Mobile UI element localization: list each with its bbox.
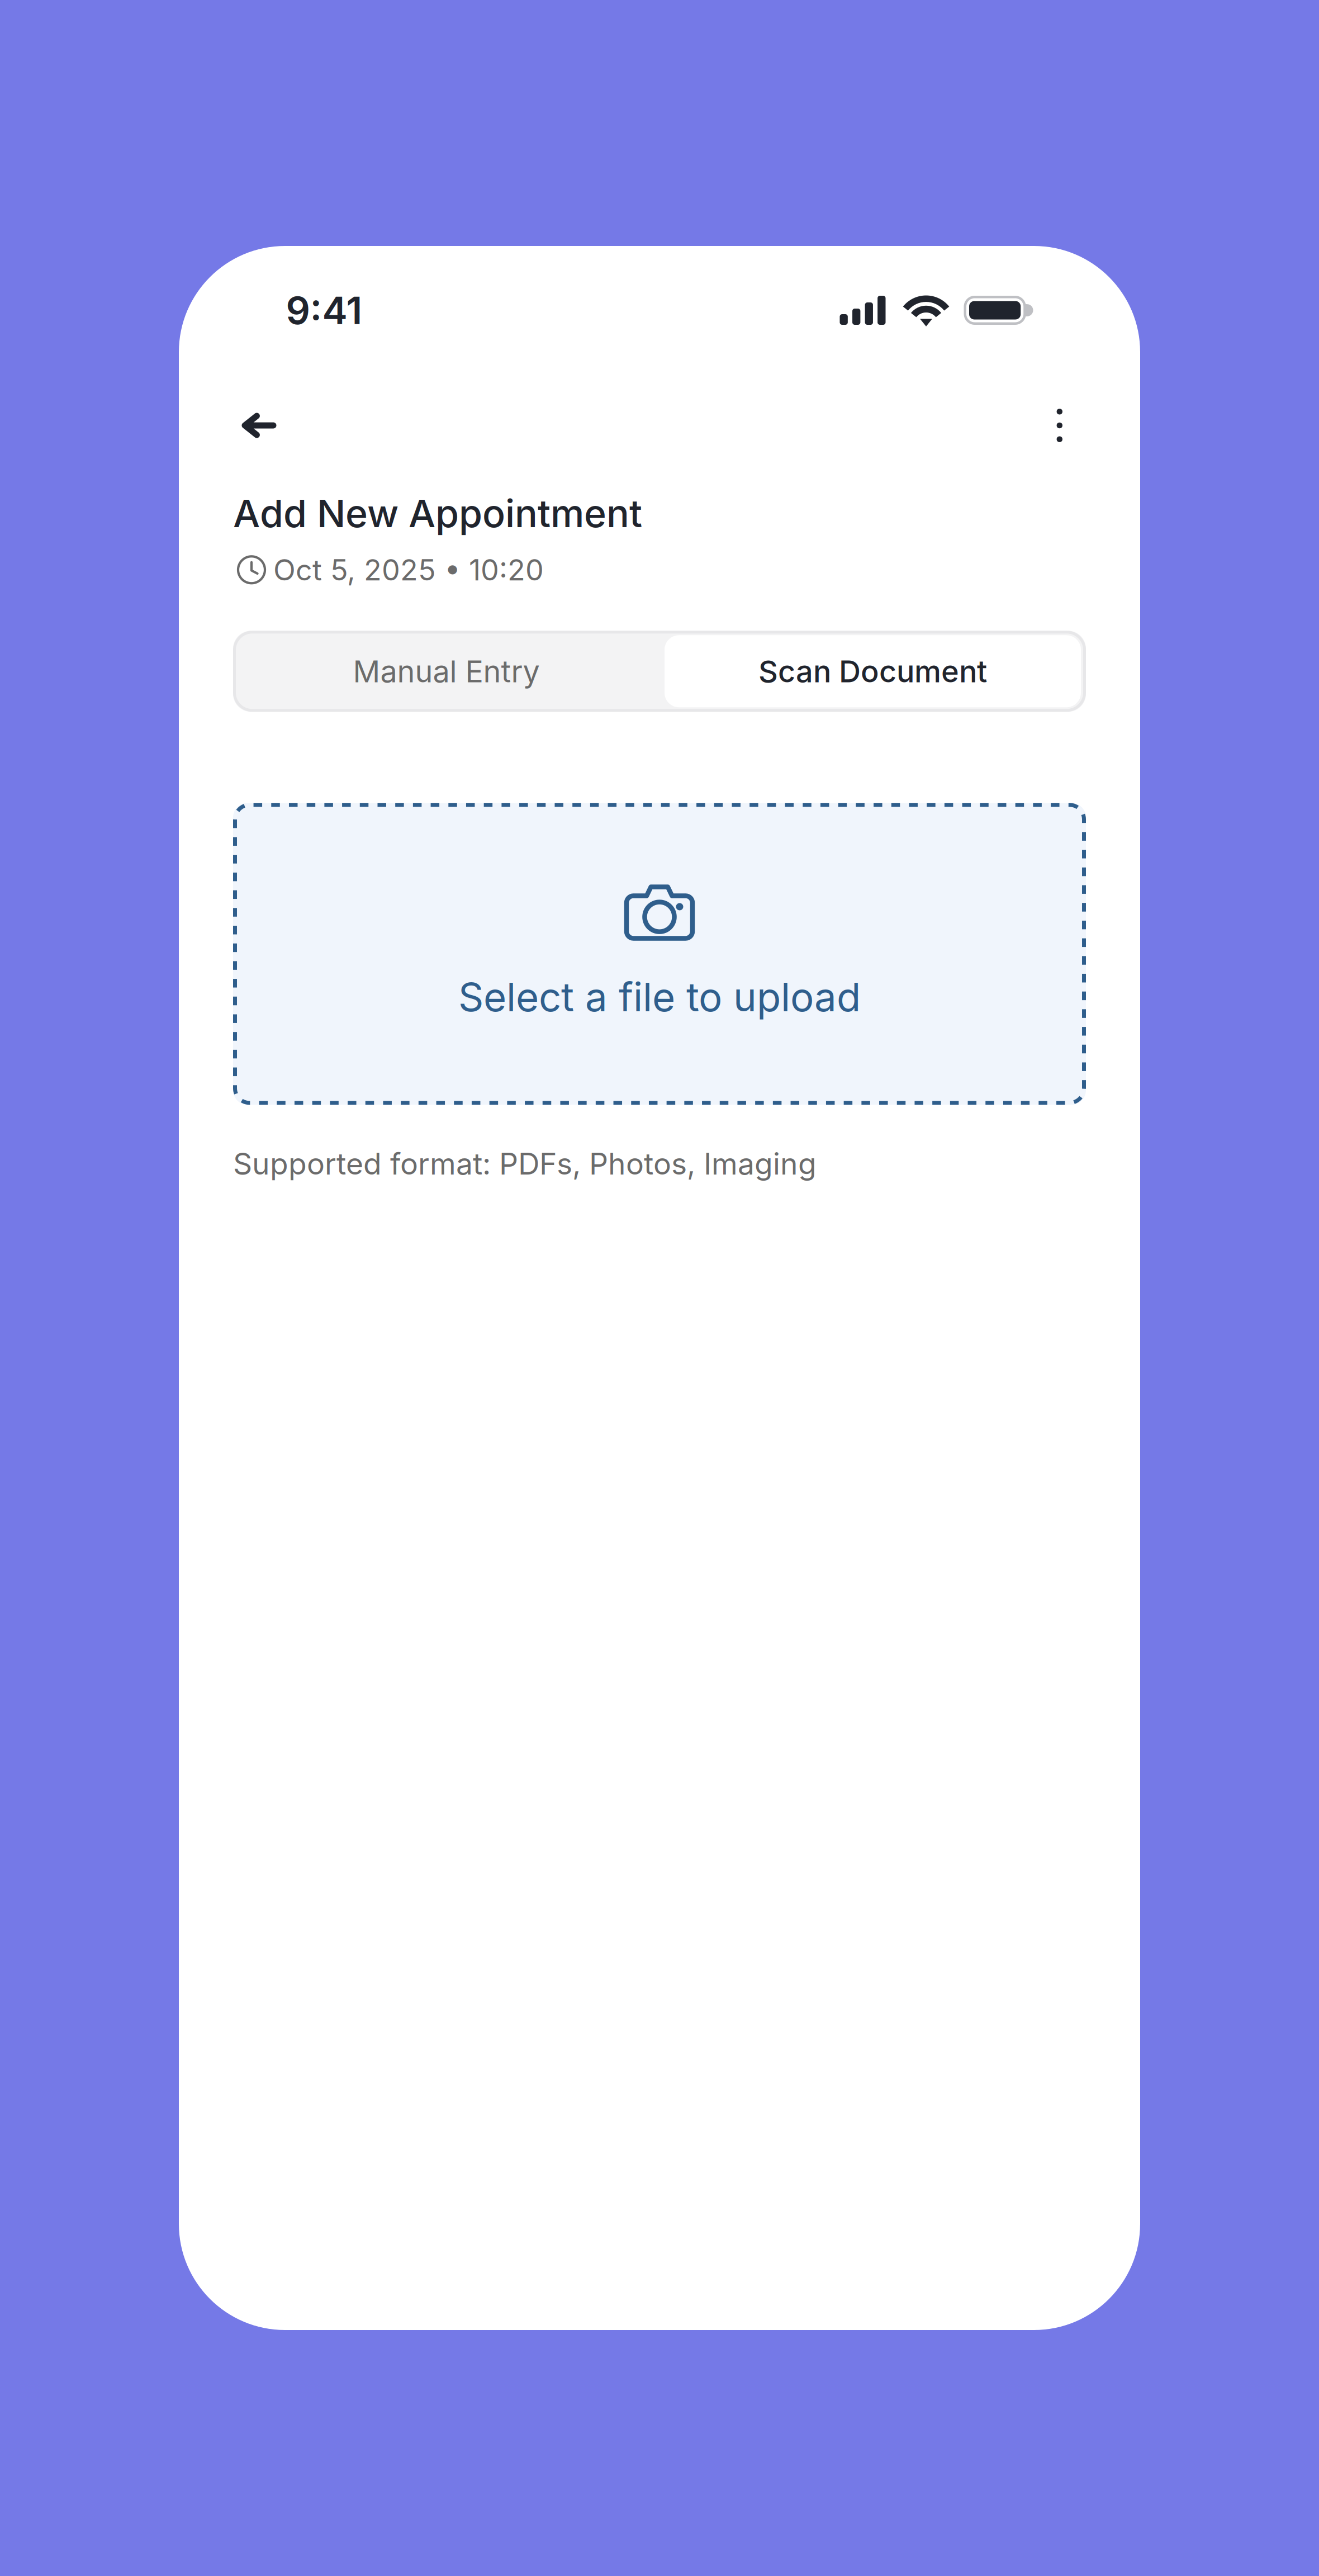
staticText: Supported format: PDFs, Photos, Imaging xyxy=(233,1146,817,1182)
button[interactable]: Scan Document xyxy=(665,635,1081,707)
button[interactable]: More options xyxy=(1038,390,1086,461)
staticText: Add New Appointment xyxy=(233,490,642,536)
staticText: Oct 5, 2025 • 10:20 xyxy=(273,552,544,587)
button[interactable]: Manual Entry xyxy=(233,631,659,712)
staticText: Select a file to upload xyxy=(458,973,861,1021)
staticText: Scan Document xyxy=(758,653,987,690)
button[interactable]: Back xyxy=(233,397,292,454)
button[interactable]: Select a file to upload xyxy=(233,803,1086,1105)
staticText: Manual Entry xyxy=(353,653,540,690)
staticText: 9:41 xyxy=(286,287,362,333)
